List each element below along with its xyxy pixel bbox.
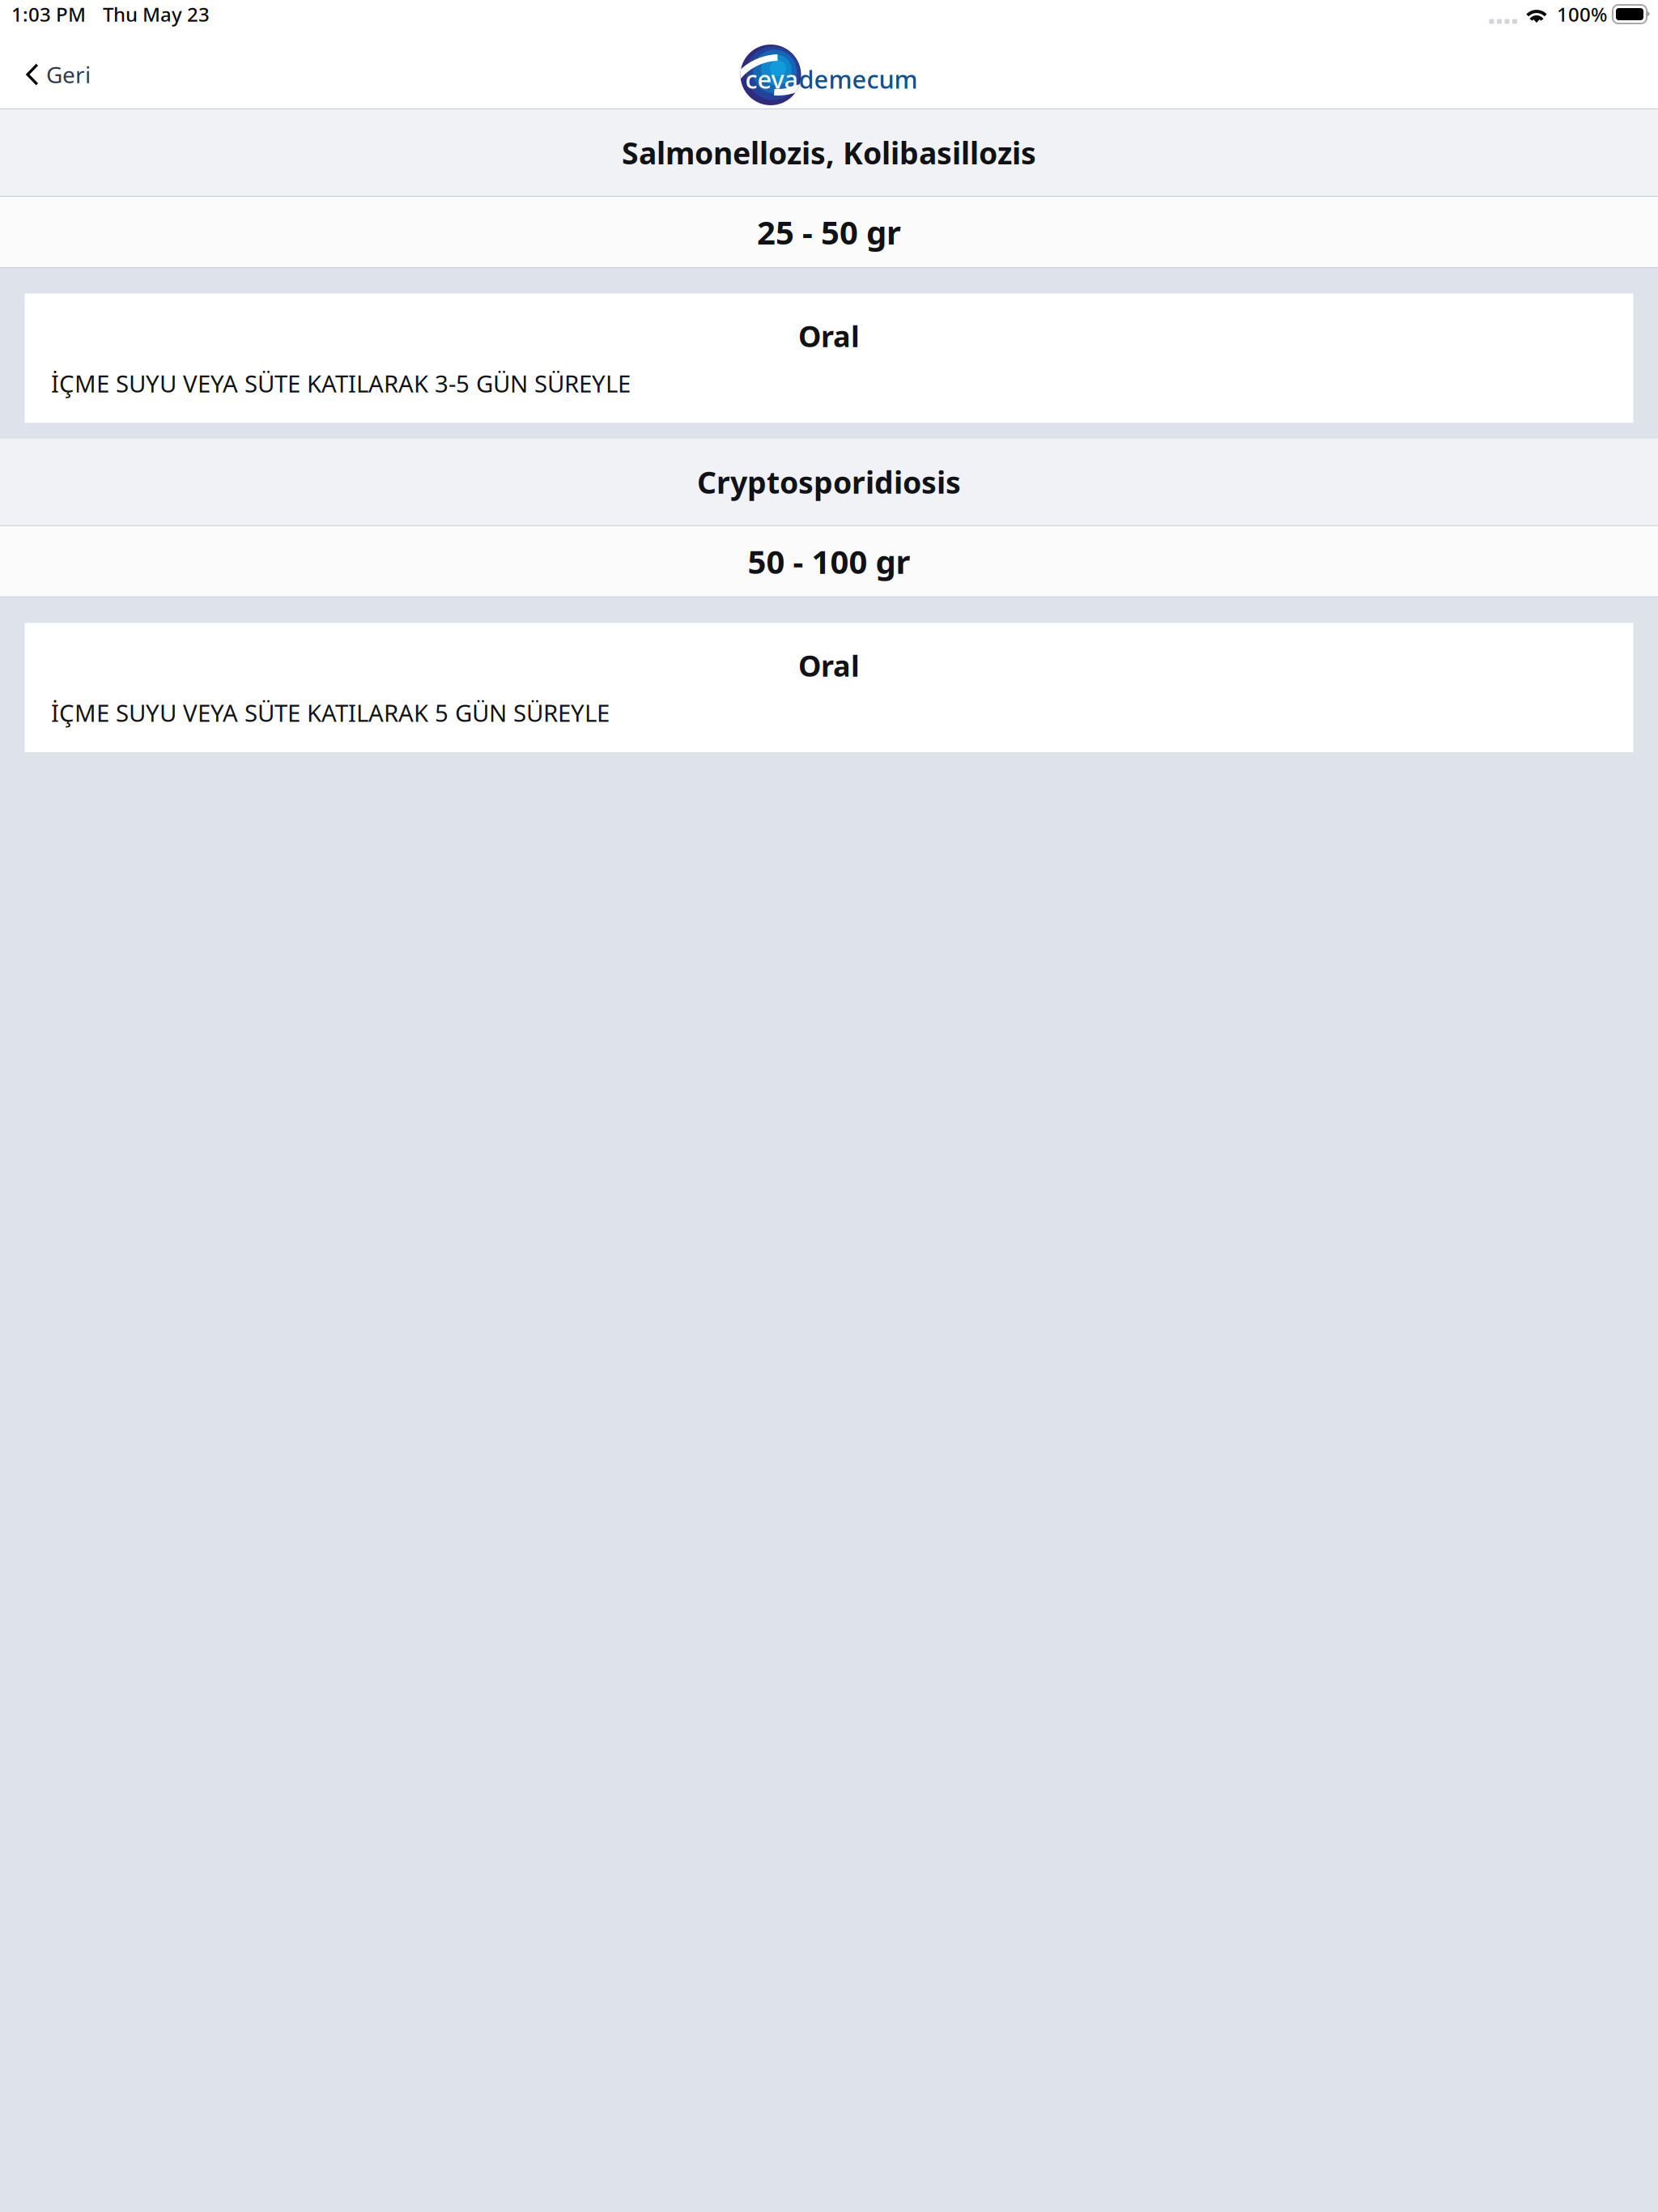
- staticText: İÇME SUYU VEYA SÜTE KATILARAK 3-5 GÜN SÜ…: [51, 367, 631, 399]
- button[interactable]: Geri: [0, 28, 107, 108]
- staticText: 50 - 100 gr: [748, 540, 910, 583]
- staticText: Thu May 23: [103, 1, 210, 27]
- staticText: Geri: [46, 59, 91, 90]
- staticText: 100%: [1557, 1, 1607, 27]
- staticText: 1:03 PM: [11, 1, 86, 27]
- staticText: Oral: [798, 317, 860, 355]
- staticText: demecum: [799, 62, 918, 95]
- staticText: 25 - 50 gr: [757, 210, 901, 253]
- staticText: Cryptosporidiosis: [697, 462, 961, 502]
- staticText: ceva: [745, 62, 799, 95]
- staticText: Oral: [798, 646, 860, 685]
- staticText: Salmonellozis, Kolibasillozis: [622, 133, 1036, 173]
- staticText: İÇME SUYU VEYA SÜTE KATILARAK 5 GÜN SÜRE…: [51, 697, 610, 728]
